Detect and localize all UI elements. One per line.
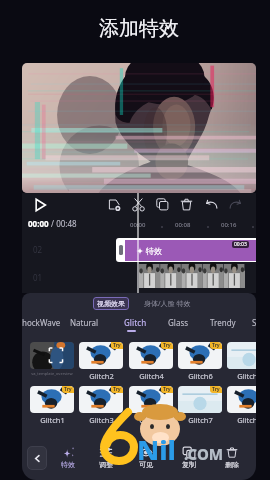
staticText: 特效 (146, 246, 162, 256)
staticText: Glitch2 (89, 371, 114, 381)
staticText: Glitch4 (139, 371, 164, 381)
button[interactable]: 身体/人脸 特效 (140, 297, 195, 310)
button[interactable]: Try (178, 386, 222, 425)
button[interactable]: Copy (155, 197, 170, 212)
staticText: 00:00 (130, 221, 146, 229)
button[interactable]: Try (79, 386, 123, 425)
staticText: / 00:48 (49, 218, 77, 229)
staticText: 添加特效 (99, 16, 179, 41)
staticText: 02 (33, 244, 43, 255)
staticText: Try (64, 386, 72, 393)
staticText: Sc (252, 317, 256, 328)
button[interactable]: Natural (66, 315, 103, 329)
button[interactable]: Delete (179, 197, 194, 212)
button[interactable]: 复制 (173, 446, 205, 469)
staticText: 特效 (61, 460, 75, 469)
button[interactable]: hockWave (22, 315, 65, 329)
staticText: Glitch1 (40, 415, 65, 425)
staticText: 00:00 (28, 218, 49, 229)
staticText: 01 (33, 272, 43, 283)
button[interactable]: Undo (204, 197, 219, 212)
staticText: Glitch3 (89, 415, 114, 425)
button[interactable]: Add sticker (107, 197, 122, 212)
staticText: Glitch5 (139, 415, 164, 425)
button[interactable]: Try (227, 386, 256, 425)
staticText: 00:08 (175, 221, 191, 229)
staticText: 调整 (99, 460, 113, 469)
button[interactable]: Redo (228, 197, 243, 212)
button[interactable]: Try (129, 342, 173, 381)
button[interactable]: Try (79, 342, 123, 381)
button[interactable]: 删除 (216, 446, 248, 469)
button[interactable]: 视频效果 (93, 297, 129, 310)
button[interactable]: Try (30, 386, 74, 425)
button[interactable]: 调整 (90, 446, 122, 469)
staticText: Try (212, 386, 220, 393)
staticText: Glitch9 (237, 415, 256, 425)
staticText: 复制 (182, 460, 196, 469)
staticText: 00:16 (221, 221, 237, 229)
staticText: 00:03 (234, 241, 247, 248)
staticText: Glitch (124, 317, 147, 328)
button[interactable]: Glass (164, 315, 193, 329)
staticText: hockWave (22, 317, 61, 328)
staticText: Nil (137, 431, 176, 468)
staticText: 可见 (139, 460, 153, 469)
button[interactable]: Play (32, 197, 48, 213)
staticText: 身体/人脸 特效 (144, 299, 191, 309)
button[interactable]: 可见 (130, 446, 162, 469)
button[interactable]: Try (227, 342, 256, 381)
staticText: Glass (168, 317, 189, 328)
staticText: Glitch6 (188, 371, 213, 381)
staticText: 删除 (225, 460, 239, 469)
button[interactable]: 特效 (116, 238, 256, 262)
button[interactable]: Try (178, 342, 222, 381)
staticText: Try (113, 386, 121, 393)
staticText: Natural (70, 317, 99, 328)
button[interactable]: Sc (248, 315, 256, 329)
staticText: Glitch7 (188, 415, 213, 425)
staticText: va_template_overview (31, 371, 73, 376)
staticText: Try (163, 342, 171, 349)
button[interactable]: Trendy (206, 315, 240, 329)
staticText: Glitch8 (237, 371, 256, 381)
button[interactable]: va_template_overview (30, 342, 74, 376)
staticText: .COM (184, 444, 224, 464)
staticText: 视频效果 (97, 299, 125, 308)
staticText: Try (163, 386, 171, 393)
staticText: Try (113, 342, 121, 349)
staticText: Trendy (210, 317, 236, 328)
button[interactable]: 特效 (52, 446, 84, 469)
button[interactable]: Back (27, 446, 47, 470)
staticText: Try (212, 342, 220, 349)
button[interactable]: Try (129, 386, 173, 425)
button[interactable]: Cut (131, 197, 146, 212)
button[interactable]: Glitch (120, 315, 151, 329)
